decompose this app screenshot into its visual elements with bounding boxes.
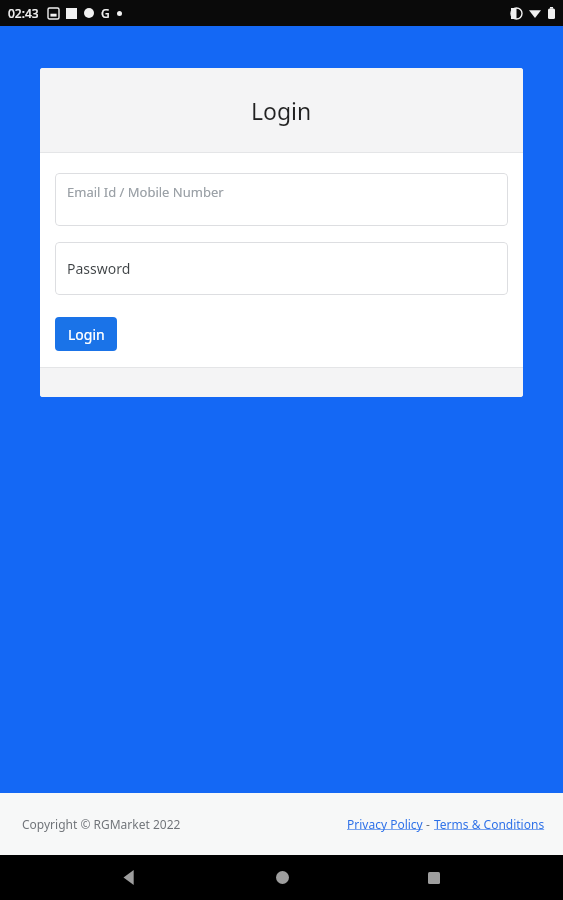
staticText: Copyright © RGMarket 2022: [22, 816, 181, 832]
button[interactable]: Home: [258, 855, 306, 900]
button[interactable]: Privacy Policy: [347, 816, 423, 832]
staticText: Terms & Conditions: [434, 816, 545, 832]
staticText: Login: [68, 325, 105, 344]
staticText: Login: [251, 95, 312, 126]
staticText: Privacy Policy: [347, 816, 423, 832]
button[interactable]: Back: [105, 855, 153, 900]
staticText: 02:43: [8, 5, 39, 21]
staticText: Email Id / Mobile Number: [67, 183, 224, 201]
staticText: -: [423, 816, 434, 832]
button[interactable]: Terms & Conditions: [434, 816, 545, 832]
button[interactable]: Recent apps: [410, 855, 458, 900]
staticText: G: [101, 5, 110, 21]
button[interactable]: Password: [55, 242, 508, 295]
staticText: Password: [67, 259, 131, 278]
button[interactable]: Login: [55, 317, 117, 351]
button[interactable]: Email Id / Mobile Number: [55, 173, 508, 226]
